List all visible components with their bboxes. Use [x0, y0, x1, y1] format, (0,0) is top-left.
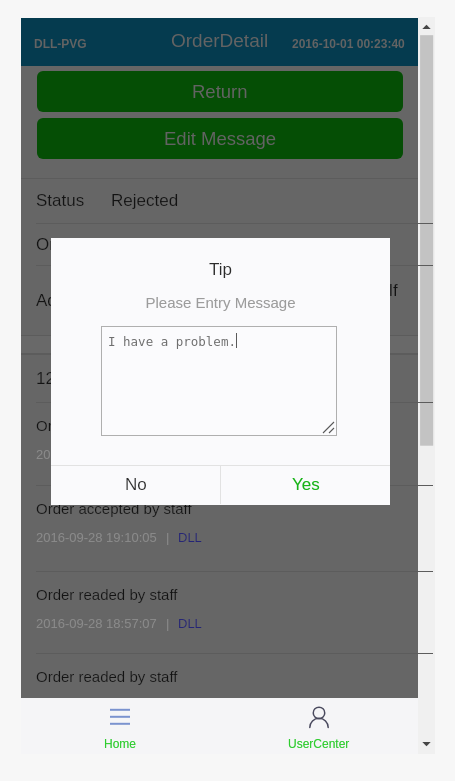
staticText: 12345678901 — [36, 369, 141, 388]
button[interactable]: Edit Message — [37, 118, 403, 159]
staticText: DLL-PVG — [34, 37, 87, 50]
staticText: 2016-09-28 18:57:07 — [36, 616, 157, 631]
staticText: Order No — [36, 235, 106, 254]
other: UserCenter — [308, 706, 330, 730]
staticText: Tip — [51, 260, 390, 279]
staticText: I have a problem. — [108, 334, 236, 349]
staticText: UserCenter — [288, 737, 350, 750]
staticText: Pudong Intl Airport Terminal West Half B… — [111, 281, 398, 319]
staticText: | — [166, 616, 170, 631]
button[interactable]: Order rejected by staff — [21, 402, 418, 485]
staticText: Order readed by staff — [36, 668, 178, 685]
staticText: Home — [104, 737, 137, 750]
button[interactable]: Order readed by staff — [21, 571, 418, 653]
staticText: DLL — [178, 530, 202, 545]
button[interactable]: Home — [21, 698, 219, 754]
button[interactable]: I have a problem. — [102, 327, 336, 435]
button[interactable]: Return — [37, 71, 403, 112]
staticText: OrderDetail — [171, 30, 269, 51]
staticText: D16092800231 — [111, 235, 228, 254]
staticText: Status — [36, 191, 85, 210]
staticText: 2016-10-01 00:23:40 — [292, 37, 405, 50]
staticText: Order readed by staff — [36, 586, 178, 603]
staticText: Edit Message — [164, 128, 277, 149]
staticText: Please Entry Message — [51, 294, 390, 311]
staticText: No — [125, 475, 147, 494]
staticText: Rejected — [111, 191, 179, 210]
button[interactable]: Yes — [221, 465, 390, 504]
staticText: 2016-09-28 19:10:05 — [36, 530, 157, 545]
button[interactable]: Order readed by staff — [21, 653, 418, 698]
staticText: Order rejected by staff — [36, 417, 185, 434]
staticText: DLL — [178, 616, 202, 631]
staticText: Return — [192, 81, 248, 102]
button[interactable]: Status — [21, 178, 418, 223]
button[interactable]: UserCenter — [219, 698, 418, 754]
staticText: 2016-09-28 19:22:31 — [36, 447, 157, 462]
staticText: Address — [36, 291, 99, 310]
staticText: Yes — [292, 475, 320, 494]
button[interactable]: Order accepted by staff — [21, 485, 418, 571]
staticText: Order accepted by staff — [36, 500, 192, 517]
other: Home — [110, 708, 130, 725]
button[interactable]: 12345678901 — [21, 354, 418, 402]
button[interactable]: No — [51, 465, 220, 504]
button[interactable]: Address — [21, 265, 418, 335]
staticText: | — [166, 530, 170, 545]
button[interactable]: Order No — [21, 223, 418, 265]
